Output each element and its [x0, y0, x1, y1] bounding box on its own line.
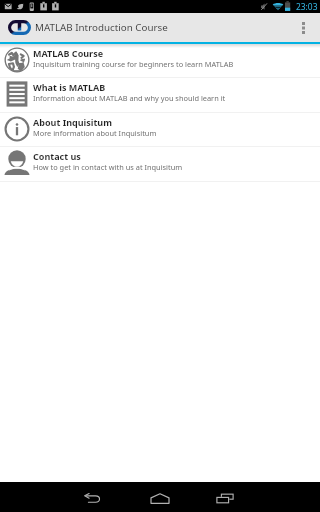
button[interactable]: MATLAB Course [0, 44, 320, 77]
staticText: Information about MATLAB and why you sho… [33, 93, 226, 103]
button[interactable]: Recent apps [195, 482, 255, 512]
button[interactable]: About Inquisitum [0, 113, 320, 146]
button[interactable]: Home [125, 482, 195, 512]
staticText: Inquisitum training course for beginners… [33, 59, 234, 69]
staticText: How to get in contact with us at Inquisi… [33, 162, 183, 172]
button[interactable]: Back [60, 482, 125, 512]
button[interactable]: What is MATLAB [0, 78, 320, 112]
button[interactable]: More options [286, 13, 320, 42]
staticText: MATLAB Course [33, 47, 104, 59]
staticText: 23:03 [296, 1, 318, 12]
staticText: More information about Inquisitum [33, 128, 157, 138]
staticText: MATLAB Introduction Course [35, 21, 168, 34]
staticText: Contact us [33, 150, 81, 162]
staticText: About Inquisitum [33, 116, 112, 128]
staticText: What is MATLAB [33, 81, 106, 93]
button[interactable]: Contact us [0, 147, 320, 181]
